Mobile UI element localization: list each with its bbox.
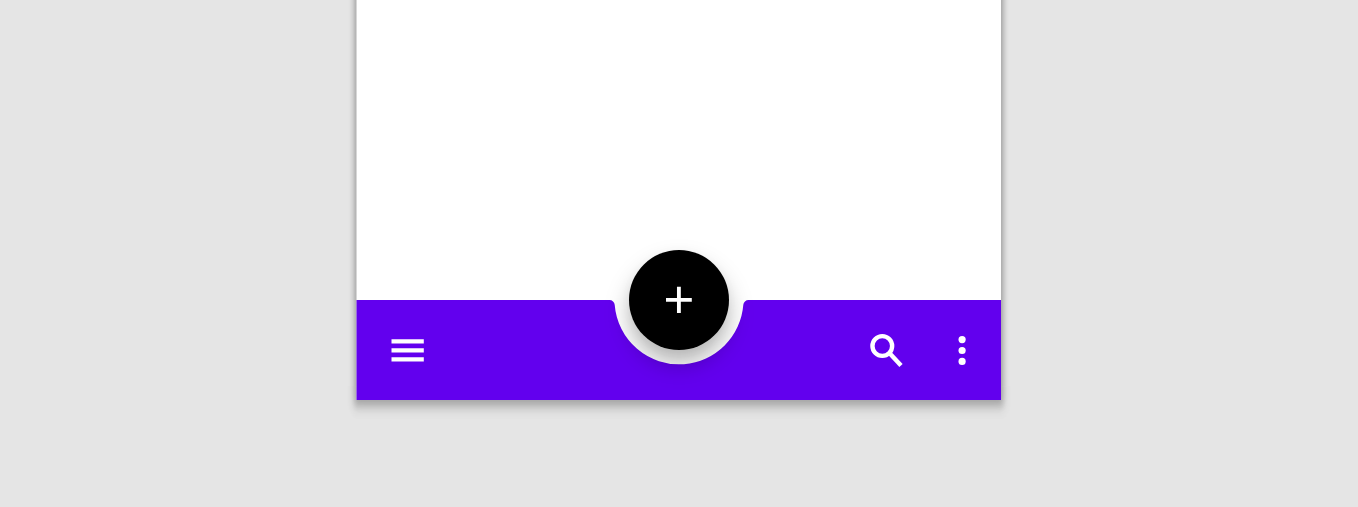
button[interactable]: Open navigation menu (377, 325, 438, 375)
button[interactable]: Search (857, 321, 907, 371)
button[interactable]: More options (937, 321, 986, 371)
button[interactable]: Add (629, 250, 729, 350)
